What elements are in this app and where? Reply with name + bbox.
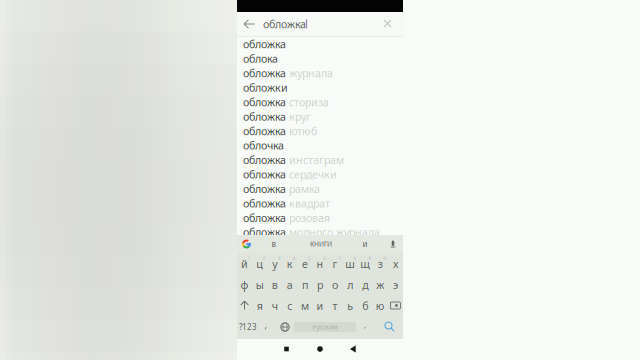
staticText: ч	[272, 299, 278, 313]
button[interactable]: Voice input	[385, 236, 401, 252]
button[interactable]: 2	[252, 253, 267, 274]
button[interactable]	[282, 274, 297, 295]
button[interactable]	[388, 253, 403, 274]
staticText: обложка	[243, 153, 286, 167]
button[interactable]: 9	[358, 253, 373, 274]
staticText: обложка	[243, 182, 286, 196]
staticText: квадрат	[286, 196, 330, 210]
button[interactable]: в	[257, 236, 291, 252]
staticText: у	[272, 257, 277, 271]
button[interactable]: ,	[257, 314, 275, 336]
button[interactable]: обложка	[237, 210, 403, 225]
button[interactable]	[358, 295, 373, 316]
staticText: 2	[263, 256, 265, 261]
button[interactable]: 1	[237, 253, 252, 274]
button[interactable]: Search	[381, 316, 399, 338]
button[interactable]: Recent apps	[271, 339, 301, 359]
button[interactable]	[327, 295, 343, 316]
staticText: с	[287, 299, 292, 313]
staticText: ь	[347, 299, 353, 313]
button[interactable]: обложка	[237, 167, 403, 182]
button[interactable]	[343, 295, 358, 316]
button[interactable]: КНИГИ	[301, 236, 341, 252]
button[interactable]: обложка	[237, 225, 403, 239]
staticText: ю	[376, 299, 385, 313]
button[interactable]: ?123	[237, 316, 259, 338]
button[interactable]	[282, 295, 297, 316]
button[interactable]: обложка	[237, 95, 403, 109]
button[interactable]: Backspace	[388, 295, 403, 316]
staticText: 3	[278, 256, 280, 261]
button[interactable]: облочка	[237, 138, 403, 153]
staticText: 8	[353, 256, 355, 261]
staticText: ф	[240, 278, 248, 292]
button[interactable]: обложка	[237, 182, 403, 196]
staticText: ?123	[239, 322, 257, 332]
staticText: ж	[376, 278, 384, 292]
staticText: обложка	[243, 225, 286, 239]
button[interactable]	[312, 295, 328, 316]
button[interactable]	[312, 274, 328, 295]
button[interactable]: .	[357, 314, 373, 336]
button[interactable]: Clear search	[377, 11, 397, 35]
button[interactable]: Home	[305, 339, 335, 359]
button[interactable]: обложки	[237, 80, 403, 95]
button[interactable]: облока	[237, 51, 403, 66]
button[interactable]: 0	[373, 253, 388, 274]
staticText: модного журнала	[286, 225, 380, 239]
button[interactable]: 8	[343, 253, 358, 274]
button[interactable]	[267, 295, 282, 316]
button[interactable]: Русский	[294, 316, 356, 338]
button[interactable]: обложка	[237, 153, 403, 167]
staticText: 0	[384, 256, 386, 261]
button[interactable]	[388, 274, 403, 295]
button[interactable]: Change language	[276, 316, 294, 338]
staticText: обложка	[243, 95, 286, 109]
staticText: ц	[256, 257, 263, 271]
staticText: обложка	[243, 167, 286, 181]
staticText: в	[272, 278, 278, 292]
staticText: сердечки	[286, 167, 337, 181]
staticText: 9	[368, 256, 370, 261]
button[interactable]: и	[348, 236, 382, 252]
button[interactable]: обложка	[237, 196, 403, 211]
button[interactable]: обложка	[237, 37, 403, 51]
staticText: обложка	[263, 17, 306, 31]
button[interactable]: 3	[267, 253, 282, 274]
staticText: ютюб	[286, 124, 317, 138]
button[interactable]: 5	[297, 253, 312, 274]
staticText: н	[316, 257, 323, 271]
staticText: щ	[360, 257, 370, 271]
button[interactable]	[327, 274, 343, 295]
button[interactable]	[373, 274, 388, 295]
staticText: в	[271, 239, 276, 249]
staticText: я	[257, 299, 263, 313]
staticText: б	[362, 299, 368, 313]
button[interactable]: Back	[237, 12, 261, 36]
button[interactable]	[297, 295, 312, 316]
button[interactable]	[252, 295, 267, 316]
staticText: р	[317, 278, 323, 292]
button[interactable]	[267, 274, 282, 295]
button[interactable]: обложка	[237, 66, 403, 80]
button[interactable]: обложка	[237, 124, 403, 138]
button[interactable]: 4	[282, 253, 297, 274]
button[interactable]: Shift	[237, 295, 252, 316]
staticText: обложка	[243, 124, 286, 138]
staticText: обложка	[243, 37, 286, 51]
button[interactable]	[373, 295, 388, 316]
button[interactable]	[343, 274, 358, 295]
button[interactable]: обложка	[237, 109, 403, 124]
button[interactable]	[252, 274, 267, 295]
button[interactable]: Back	[338, 339, 368, 359]
staticText: и	[316, 299, 323, 313]
button[interactable]: 7	[327, 253, 343, 274]
staticText: .	[363, 319, 366, 331]
button[interactable]	[237, 274, 252, 295]
staticText: круг	[286, 109, 311, 124]
button[interactable]: 6	[312, 253, 328, 274]
staticText: т	[333, 299, 338, 313]
button[interactable]: Google	[238, 236, 254, 252]
button[interactable]	[358, 274, 373, 295]
button[interactable]	[297, 274, 312, 295]
